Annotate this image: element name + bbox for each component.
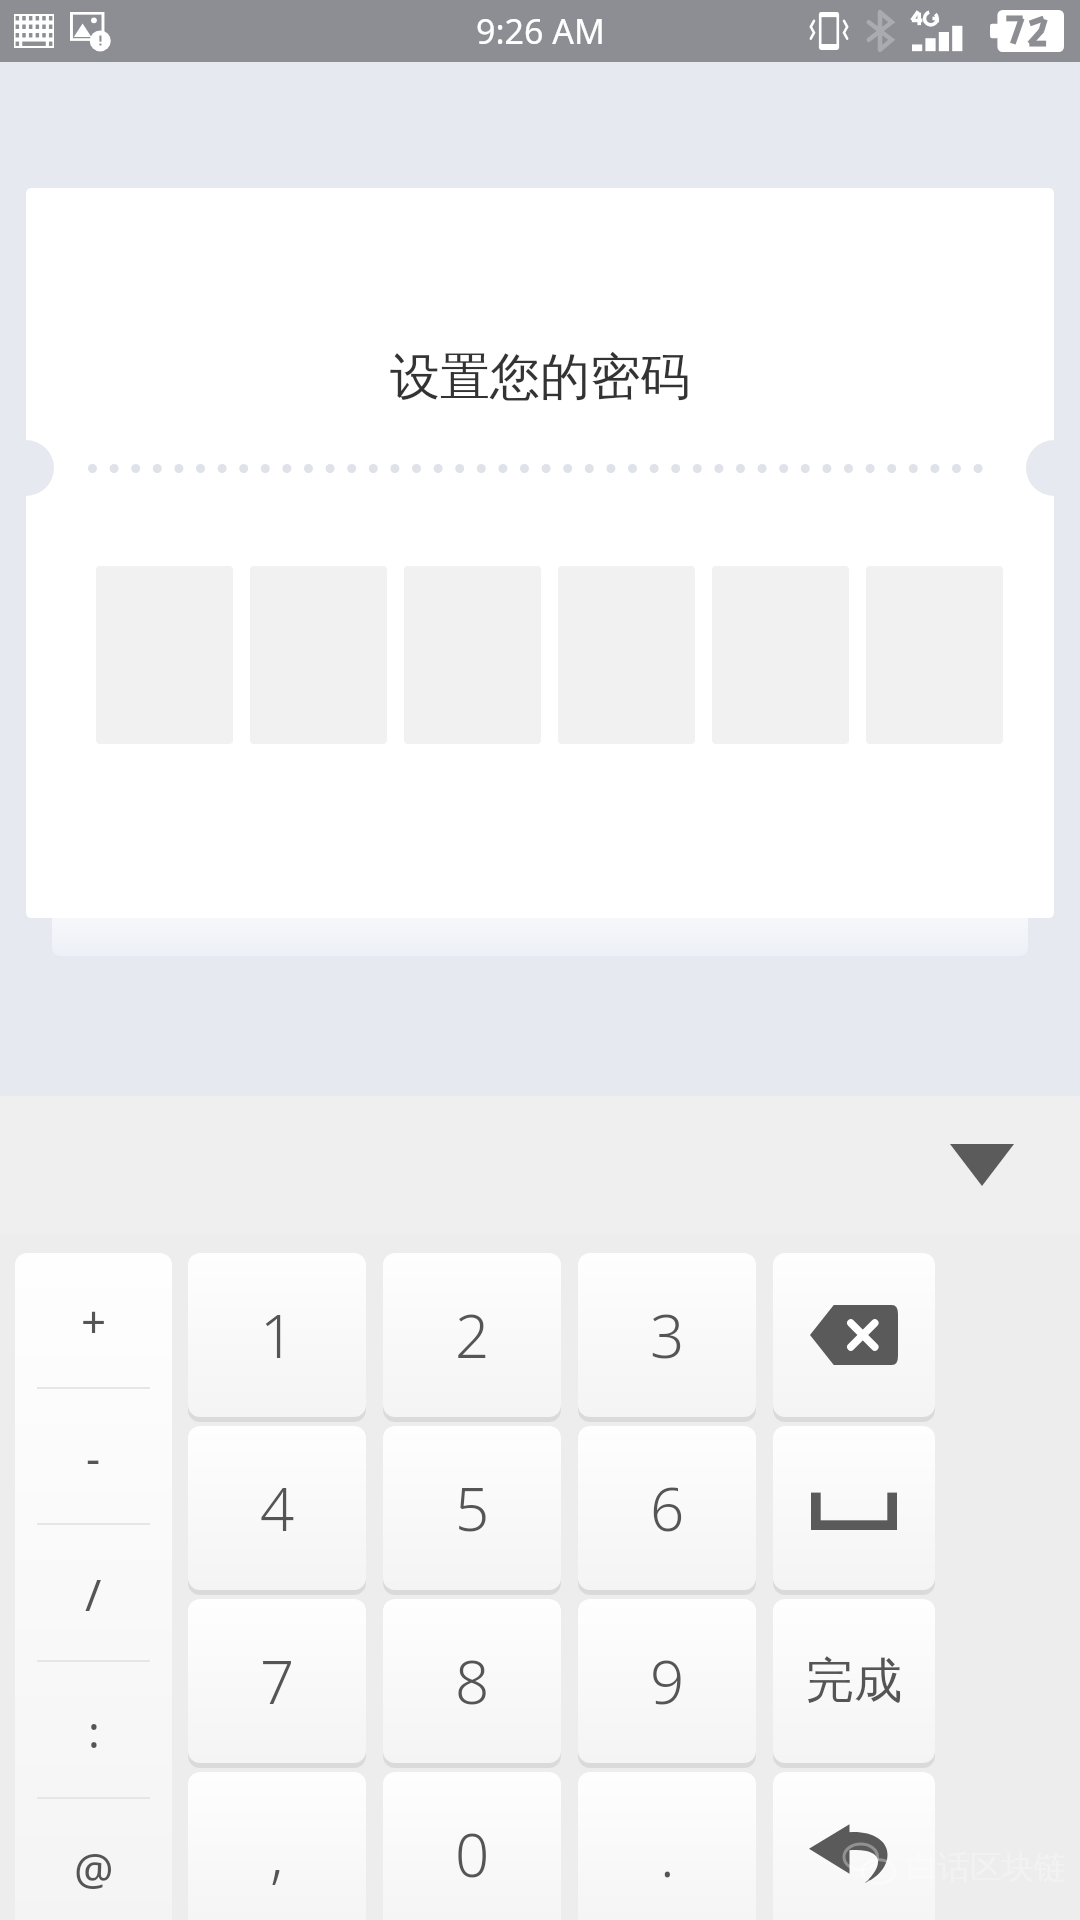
staticText: - — [86, 1427, 101, 1487]
button[interactable]: , — [188, 1772, 366, 1920]
staticText: 5 — [455, 1467, 490, 1549]
button[interactable]: 完成 — [773, 1599, 935, 1763]
staticText: 6 — [650, 1467, 685, 1549]
staticText: 设置您的密码 — [390, 346, 690, 409]
button[interactable]: 8 — [383, 1599, 561, 1763]
staticText: + — [81, 1291, 107, 1351]
button[interactable]: + — [15, 1253, 172, 1920]
button[interactable]: Delete — [773, 1253, 935, 1417]
button[interactable]: 0 — [383, 1772, 561, 1920]
staticText: 0 — [455, 1813, 490, 1895]
staticText: 白话区块链 — [906, 1847, 1066, 1887]
staticText: 8 — [455, 1640, 490, 1722]
button[interactable]: 5 — [383, 1426, 561, 1590]
staticText: 1 — [260, 1294, 295, 1376]
staticText: 3 — [650, 1294, 685, 1376]
button[interactable]: Space — [773, 1426, 935, 1590]
button[interactable]: 2 — [383, 1253, 561, 1417]
button[interactable]: 1 — [188, 1253, 366, 1417]
staticText: 9:26 AM — [476, 8, 605, 54]
staticText: 9 — [650, 1640, 685, 1722]
button[interactable]: . — [578, 1772, 756, 1920]
button[interactable]: 4 — [188, 1426, 366, 1590]
staticText: 完成 — [806, 1651, 902, 1711]
staticText: / — [85, 1564, 102, 1624]
staticText: 2 — [455, 1294, 490, 1376]
staticText: 7 — [260, 1640, 295, 1722]
button[interactable]: Hide keyboard — [936, 1119, 1028, 1211]
button[interactable]: 6 — [578, 1426, 756, 1590]
button[interactable]: Return — [773, 1772, 935, 1920]
staticText: 4 — [260, 1467, 295, 1549]
button[interactable]: 3 — [578, 1253, 756, 1417]
staticText: @ — [74, 1838, 114, 1898]
button[interactable]: 7 — [188, 1599, 366, 1763]
button[interactable]: 9 — [578, 1599, 756, 1763]
staticText: : — [88, 1701, 100, 1761]
staticText: . — [660, 1813, 675, 1895]
staticText: , — [270, 1813, 284, 1895]
